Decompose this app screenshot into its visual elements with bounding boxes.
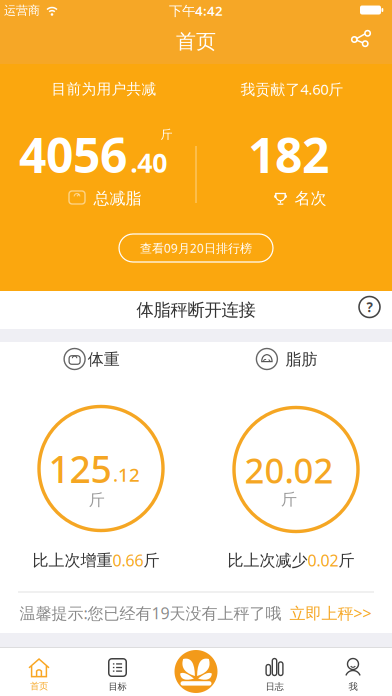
staticText: 我贡献了4.60斤 <box>240 79 343 99</box>
button[interactable]: 体脂秤断开连接 <box>136 299 255 321</box>
staticText: 体重 <box>88 350 120 369</box>
staticText: 125 <box>48 444 111 493</box>
staticText: 斤 <box>143 550 159 570</box>
staticText: .12 <box>113 462 140 487</box>
button[interactable]: 瘦瘦 <box>174 650 217 693</box>
button[interactable]: 温馨提示:您已经有19天没有上秤了哦 <box>19 602 371 624</box>
staticText: 0.02 <box>307 550 338 571</box>
button[interactable]: 目标 <box>107 657 127 692</box>
staticText: 斤 <box>338 550 354 570</box>
staticText: 首页 <box>30 680 48 692</box>
button[interactable]: 日志 <box>264 657 284 692</box>
staticText: 斤 <box>89 490 105 510</box>
staticText: 立即上秤>> <box>289 602 371 624</box>
staticText: 182 <box>248 123 329 186</box>
button[interactable]: 查看09月20日排行榜 <box>119 234 273 262</box>
staticText: 目标 <box>108 681 126 692</box>
staticText: 首页 <box>176 29 216 54</box>
button[interactable]: 分享 <box>351 30 370 47</box>
staticText: .40 <box>130 145 167 180</box>
staticText: 20.02 <box>244 447 333 493</box>
staticText: 目前为用户共减 <box>51 80 156 98</box>
staticText: 日志 <box>265 681 283 692</box>
staticText: 脂肪 <box>285 350 317 369</box>
staticText: 运营商 <box>4 3 40 18</box>
staticText: 比上次减少 <box>227 550 307 570</box>
staticText: 名次 <box>294 189 326 208</box>
button[interactable]: 首页 <box>28 658 50 692</box>
staticText: 下午4:42 <box>169 2 223 19</box>
button[interactable]: 我 <box>343 657 363 692</box>
staticText: 斤 <box>281 490 297 509</box>
staticText: 4056 <box>19 123 127 186</box>
staticText: 比上次增重 <box>32 550 112 570</box>
staticText: 总减脂 <box>93 189 141 208</box>
staticText: 温馨提示:您已经有19天没有上秤了哦 <box>19 602 281 624</box>
staticText: 查看09月20日排行榜 <box>140 240 252 256</box>
staticText: 0.66 <box>112 550 143 571</box>
staticText: ? <box>366 298 372 316</box>
staticText: 体脂秤断开连接 <box>136 299 255 321</box>
staticText: 我 <box>348 681 357 692</box>
button[interactable]: 帮助 <box>358 296 380 318</box>
staticText: 斤 <box>160 127 172 142</box>
